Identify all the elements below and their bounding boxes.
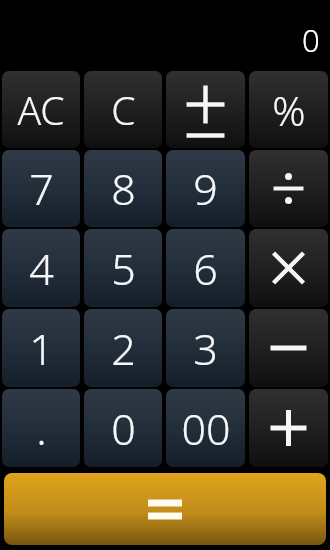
button[interactable]: C bbox=[84, 71, 162, 148]
staticText: 7 bbox=[29, 159, 54, 218]
button[interactable]: 2 bbox=[84, 309, 162, 387]
button[interactable]: . bbox=[2, 389, 80, 467]
button[interactable]: 3 bbox=[166, 309, 245, 387]
button[interactable]: 9 bbox=[166, 150, 245, 227]
staticText: 0 bbox=[302, 19, 320, 61]
button[interactable]: 00 bbox=[166, 389, 245, 467]
button[interactable]: 0 bbox=[84, 389, 162, 467]
button[interactable]: 6 bbox=[166, 229, 245, 307]
staticText: 4 bbox=[29, 239, 54, 298]
staticText: 5 bbox=[111, 239, 136, 298]
button[interactable]: AC bbox=[2, 71, 80, 148]
button[interactable]: Equals bbox=[4, 473, 326, 545]
button[interactable]: 7 bbox=[2, 150, 80, 227]
staticText: 3 bbox=[193, 319, 218, 378]
button[interactable]: 8 bbox=[84, 150, 162, 227]
button[interactable]: Multiply bbox=[249, 229, 328, 307]
button[interactable]: Plus minus bbox=[166, 71, 245, 148]
button[interactable]: 1 bbox=[2, 309, 80, 387]
button[interactable]: Divide bbox=[249, 150, 328, 227]
staticText: 8 bbox=[111, 159, 136, 218]
staticText: 2 bbox=[111, 319, 136, 378]
staticText: . bbox=[36, 399, 47, 458]
staticText: 9 bbox=[193, 159, 218, 218]
staticText: 1 bbox=[29, 319, 54, 378]
staticText: 00 bbox=[181, 399, 231, 458]
button[interactable]: Subtract bbox=[249, 309, 328, 387]
staticText: 6 bbox=[193, 239, 218, 298]
staticText: AC bbox=[17, 83, 65, 136]
button[interactable]: % bbox=[249, 71, 328, 148]
staticText: C bbox=[111, 83, 136, 136]
button[interactable]: Add bbox=[249, 389, 328, 467]
staticText: % bbox=[272, 82, 306, 138]
staticText: 0 bbox=[111, 399, 136, 458]
button[interactable]: 4 bbox=[2, 229, 80, 307]
button[interactable]: 5 bbox=[84, 229, 162, 307]
